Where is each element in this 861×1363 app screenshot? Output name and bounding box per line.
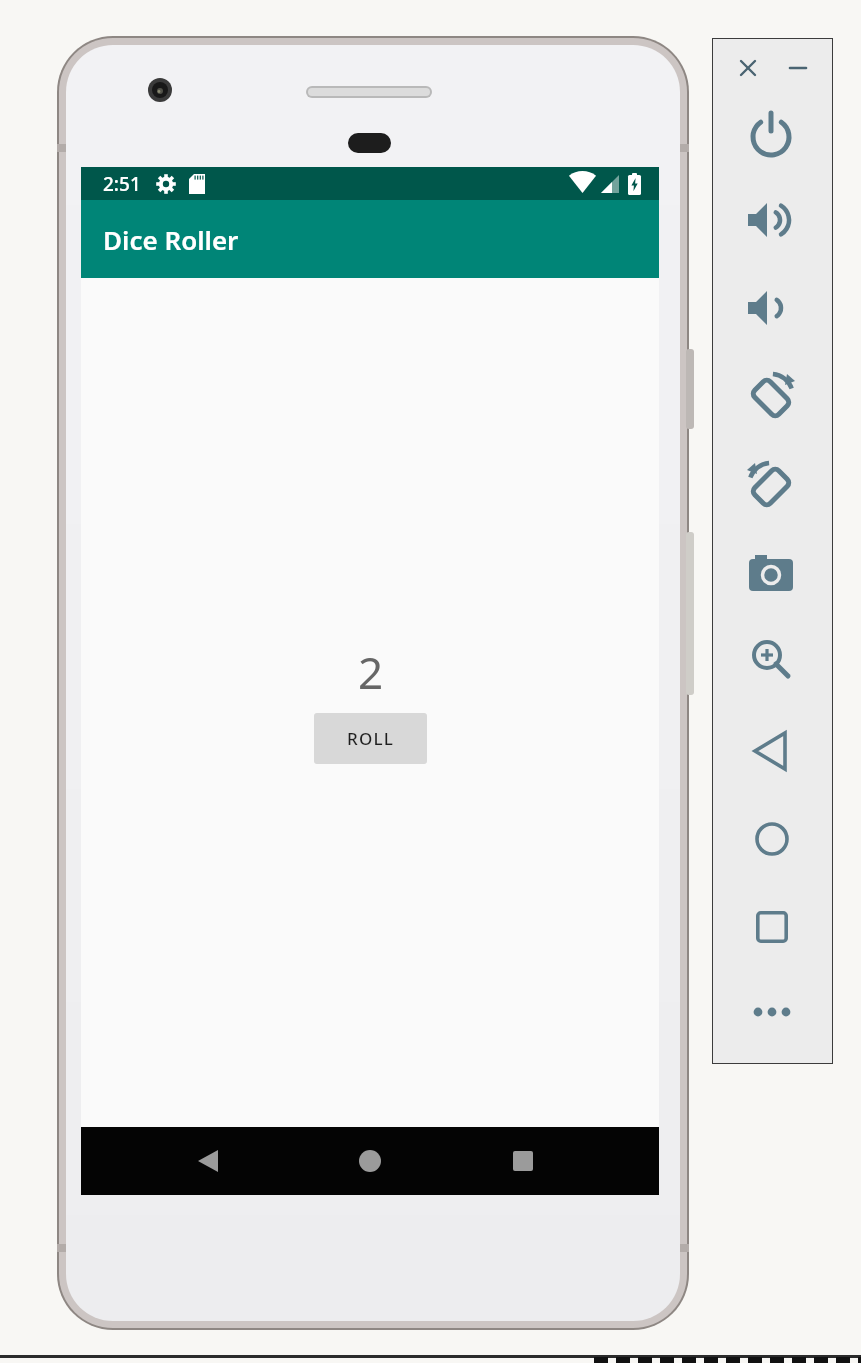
button[interactable] (747, 461, 795, 509)
staticText: Dice Roller (103, 222, 239, 257)
button[interactable] (753, 1006, 791, 1018)
button[interactable] (789, 59, 807, 77)
button[interactable] (513, 1151, 533, 1171)
button[interactable] (755, 822, 789, 856)
button[interactable] (359, 1150, 381, 1172)
button[interactable]: ROLL (314, 713, 427, 764)
button[interactable] (196, 1150, 218, 1172)
button[interactable] (756, 911, 788, 943)
button[interactable] (748, 200, 794, 240)
staticText: 2 (358, 642, 384, 702)
button[interactable] (739, 59, 757, 77)
button[interactable] (749, 113, 793, 157)
button[interactable] (747, 372, 795, 420)
button[interactable] (750, 638, 792, 680)
button[interactable] (748, 288, 788, 328)
button[interactable] (749, 555, 793, 591)
button[interactable] (753, 731, 789, 771)
staticText: 2:51 (103, 171, 141, 197)
staticText: ROLL (347, 727, 395, 750)
